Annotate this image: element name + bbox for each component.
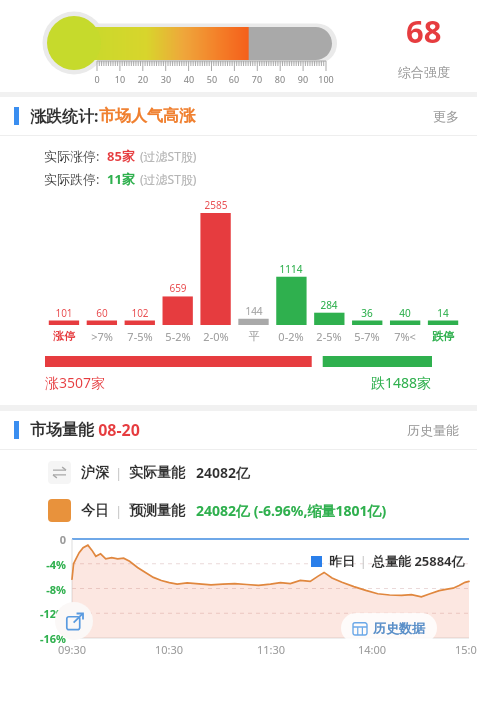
staticText: 60 [219, 73, 249, 85]
staticText: 0 [82, 73, 112, 85]
staticText: 284 [310, 298, 348, 312]
staticText: 综合强度 [398, 64, 450, 80]
staticText: 659 [159, 281, 197, 295]
staticText: 平 [235, 329, 273, 343]
staticText: 涨停 [45, 329, 83, 343]
staticText: 40 [174, 73, 204, 85]
staticText: 更多 [433, 108, 459, 124]
staticText: 14 [424, 306, 462, 320]
button[interactable]: 沪深 [48, 461, 477, 484]
staticText: 70 [242, 73, 272, 85]
staticText: 100 [311, 73, 341, 85]
staticText: | [115, 464, 123, 482]
staticText: (过滤ST股) [140, 171, 197, 187]
staticText: 7-5% [121, 329, 159, 344]
staticText: 7%< [386, 329, 424, 344]
staticText: 2585 [197, 198, 235, 212]
staticText: 15:00 [444, 642, 477, 657]
staticText: 24082亿 (-6.96%,缩量1801亿) [196, 501, 387, 520]
staticText: 102 [121, 306, 159, 320]
staticText: 预测量能 [129, 502, 185, 520]
staticText: | [360, 553, 367, 569]
staticText: 85家 [107, 147, 135, 165]
staticText: 市场人气高涨 [99, 106, 195, 126]
staticText: 80 [265, 73, 295, 85]
button[interactable]: 更多 [429, 104, 463, 128]
staticText: 历史数据 [373, 620, 425, 636]
staticText: 昨日 [329, 553, 355, 569]
staticText: 0 [16, 532, 66, 547]
button[interactable]: 历史数据 [341, 613, 437, 643]
staticText: 1114 [272, 262, 310, 276]
staticText: 24082亿 [196, 463, 251, 482]
staticText: 101 [45, 306, 83, 320]
staticText: 涨跌统计: [30, 105, 99, 127]
staticText: | [115, 502, 123, 520]
staticText: -12% [16, 606, 66, 621]
staticText: 实际涨停: [44, 147, 100, 165]
staticText: 历史量能 [407, 422, 459, 438]
staticText: 5-7% [348, 329, 386, 344]
staticText: 涨3507家 [45, 373, 106, 392]
staticText: 68 [406, 10, 442, 52]
staticText: 10 [105, 73, 135, 85]
staticText: 40 [386, 306, 424, 320]
staticText: -4% [16, 557, 66, 572]
button[interactable]: 今日 [48, 499, 477, 522]
staticText: -8% [16, 582, 66, 597]
staticText: 20 [128, 73, 158, 85]
button[interactable]: 历史量能 [403, 418, 463, 442]
staticText: 5-2% [159, 329, 197, 344]
staticText: 今日 [81, 502, 109, 520]
staticText: 沪深 [81, 464, 109, 482]
staticText: 09:30 [47, 642, 97, 657]
staticText: 14:00 [347, 642, 397, 657]
staticText: 11:30 [246, 642, 296, 657]
staticText: 总量能 25884亿 [372, 552, 465, 570]
staticText: 90 [288, 73, 318, 85]
staticText: >7% [83, 329, 121, 344]
staticText: 10:30 [144, 642, 194, 657]
staticText: 60 [83, 306, 121, 320]
staticText: 11家 [107, 170, 135, 188]
staticText: 0-2% [272, 329, 310, 344]
staticText: 144 [235, 304, 273, 318]
staticText: 50 [197, 73, 227, 85]
staticText: 08-20 [94, 419, 140, 441]
staticText: 实际跌停: [44, 170, 100, 188]
staticText: -16% [16, 631, 66, 646]
staticText: 实际量能 [129, 464, 185, 482]
staticText: 2-5% [310, 329, 348, 344]
staticText: 36 [348, 306, 386, 320]
staticText: 跌1488家 [371, 373, 432, 392]
staticText: 2-0% [197, 329, 235, 344]
staticText: 市场量能 [30, 420, 94, 440]
staticText: 跌停 [424, 329, 462, 343]
staticText: 30 [151, 73, 181, 85]
staticText: (过滤ST股) [140, 148, 197, 164]
button[interactable]: Share [55, 602, 93, 640]
